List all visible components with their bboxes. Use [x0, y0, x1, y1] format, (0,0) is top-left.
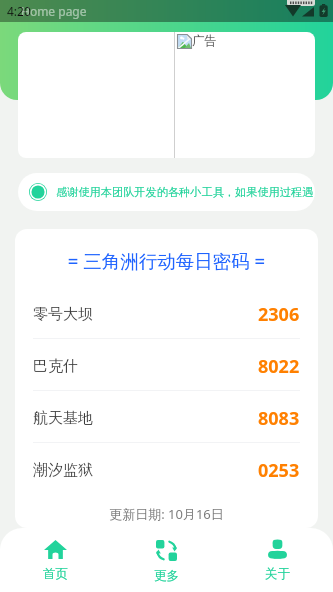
staticText: 更新日期: 10月16日 — [15, 505, 318, 523]
button[interactable]: About — [222, 528, 333, 582]
staticText: 8083 — [258, 406, 300, 431]
staticText: = 三角洲行动每日密码 = — [15, 248, 318, 273]
button[interactable]: 潮汐监狱 — [15, 443, 318, 494]
button[interactable]: 巴克什 — [15, 339, 318, 391]
button[interactable]: Home — [0, 528, 111, 582]
staticText: 零号大坝 — [33, 305, 93, 324]
staticText: 感谢使用本团队开发的各种小工具，如果使用过程遇 — [56, 185, 314, 199]
staticText: 4:20 — [7, 3, 31, 19]
staticText: 2306 — [258, 302, 300, 327]
button[interactable]: 感谢使用本团队开发的各种小工具，如果使用过程遇 — [18, 173, 315, 211]
staticText: 0253 — [258, 458, 300, 483]
staticText: 更多 — [154, 568, 179, 584]
staticText: 巴克什 — [33, 357, 78, 376]
staticText: 关于 — [265, 566, 290, 582]
staticText: Home page — [21, 3, 87, 19]
button[interactable]: 航天基地 — [15, 391, 318, 443]
staticText: 广告 — [192, 33, 217, 49]
staticText: 航天基地 — [33, 409, 93, 428]
button[interactable]: More — [111, 528, 222, 584]
staticText: 首页 — [43, 566, 68, 582]
staticText: 8022 — [258, 354, 300, 379]
button[interactable]: 零号大坝 — [15, 287, 318, 339]
staticText: 潮汐监狱 — [33, 461, 93, 480]
